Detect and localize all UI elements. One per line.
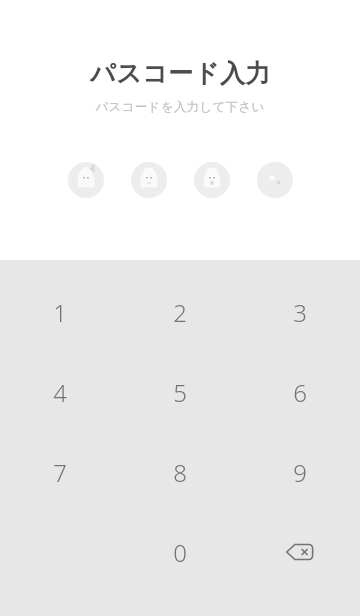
button[interactable]: 3 bbox=[270, 282, 330, 342]
staticText: 7 bbox=[53, 456, 67, 489]
staticText: パスコードを入力して下さい bbox=[95, 99, 265, 115]
staticText: 9 bbox=[293, 456, 307, 489]
button[interactable]: 6 bbox=[270, 362, 330, 422]
staticText: パスコード入力 bbox=[90, 58, 271, 89]
staticText: 2 bbox=[173, 296, 187, 329]
staticText: 1 bbox=[53, 296, 67, 329]
button[interactable]: 1 bbox=[30, 282, 90, 342]
staticText: 3 bbox=[293, 296, 307, 329]
button[interactable]: Backspace bbox=[270, 522, 330, 582]
button[interactable]: 5 bbox=[150, 362, 210, 422]
button[interactable]: 8 bbox=[150, 442, 210, 502]
button[interactable]: 7 bbox=[30, 442, 90, 502]
staticText: 4 bbox=[53, 376, 67, 409]
staticText: 5 bbox=[173, 376, 187, 409]
button[interactable]: 2 bbox=[150, 282, 210, 342]
staticText: 8 bbox=[173, 456, 187, 489]
staticText: 6 bbox=[293, 376, 307, 409]
button[interactable]: 0 bbox=[150, 522, 210, 582]
button[interactable]: 9 bbox=[270, 442, 330, 502]
staticText: 0 bbox=[173, 536, 187, 569]
button[interactable]: 4 bbox=[30, 362, 90, 422]
